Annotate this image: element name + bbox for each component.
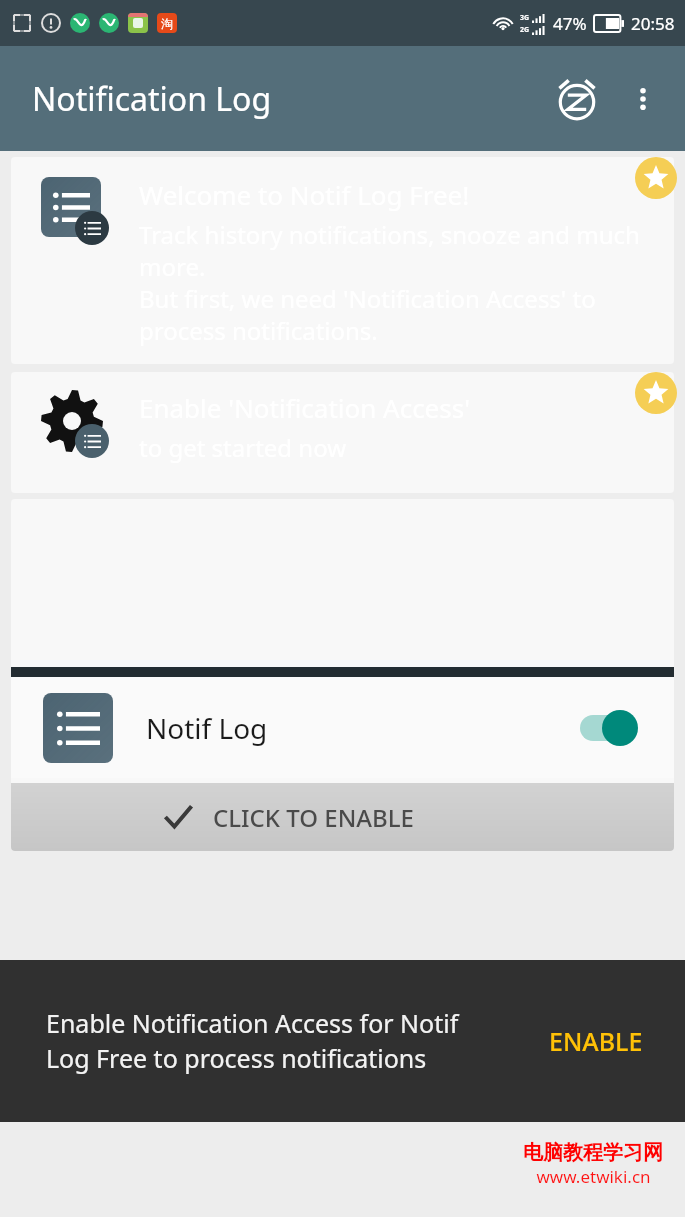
staticText: 2G (520, 25, 530, 35)
staticText: Notification Log (32, 77, 272, 121)
button[interactable]: Favorite (635, 157, 677, 199)
button[interactable]: CLICK TO ENABLE (11, 783, 674, 851)
staticText: ENABLE (549, 1024, 643, 1058)
staticText: Enable Notification Access for Notif Log… (46, 1006, 533, 1076)
button[interactable]: ENABLE (533, 1012, 659, 1070)
staticText: 47% (553, 12, 587, 35)
staticText: 淘 (161, 16, 173, 31)
button[interactable]: Notif Log enabled (576, 708, 642, 748)
staticText: 3G (520, 13, 530, 23)
button[interactable]: Favorite (635, 372, 677, 414)
staticText: CLICK TO ENABLE (213, 801, 414, 834)
button[interactable]: Notif Log (11, 677, 674, 778)
staticText: Notif Log (146, 709, 268, 747)
staticText: 电脑教程学习网 (523, 1140, 663, 1165)
staticText: 20:58 (631, 12, 675, 35)
button[interactable]: Snooze (549, 71, 605, 127)
staticText: www.etwiki.cn (536, 1165, 651, 1188)
button[interactable]: Notif Log (11, 499, 674, 851)
button[interactable]: Welcome to Notif Log Free! (11, 157, 674, 364)
button[interactable]: Enable 'Notification Access' (11, 372, 674, 493)
button[interactable]: More options (619, 75, 667, 123)
